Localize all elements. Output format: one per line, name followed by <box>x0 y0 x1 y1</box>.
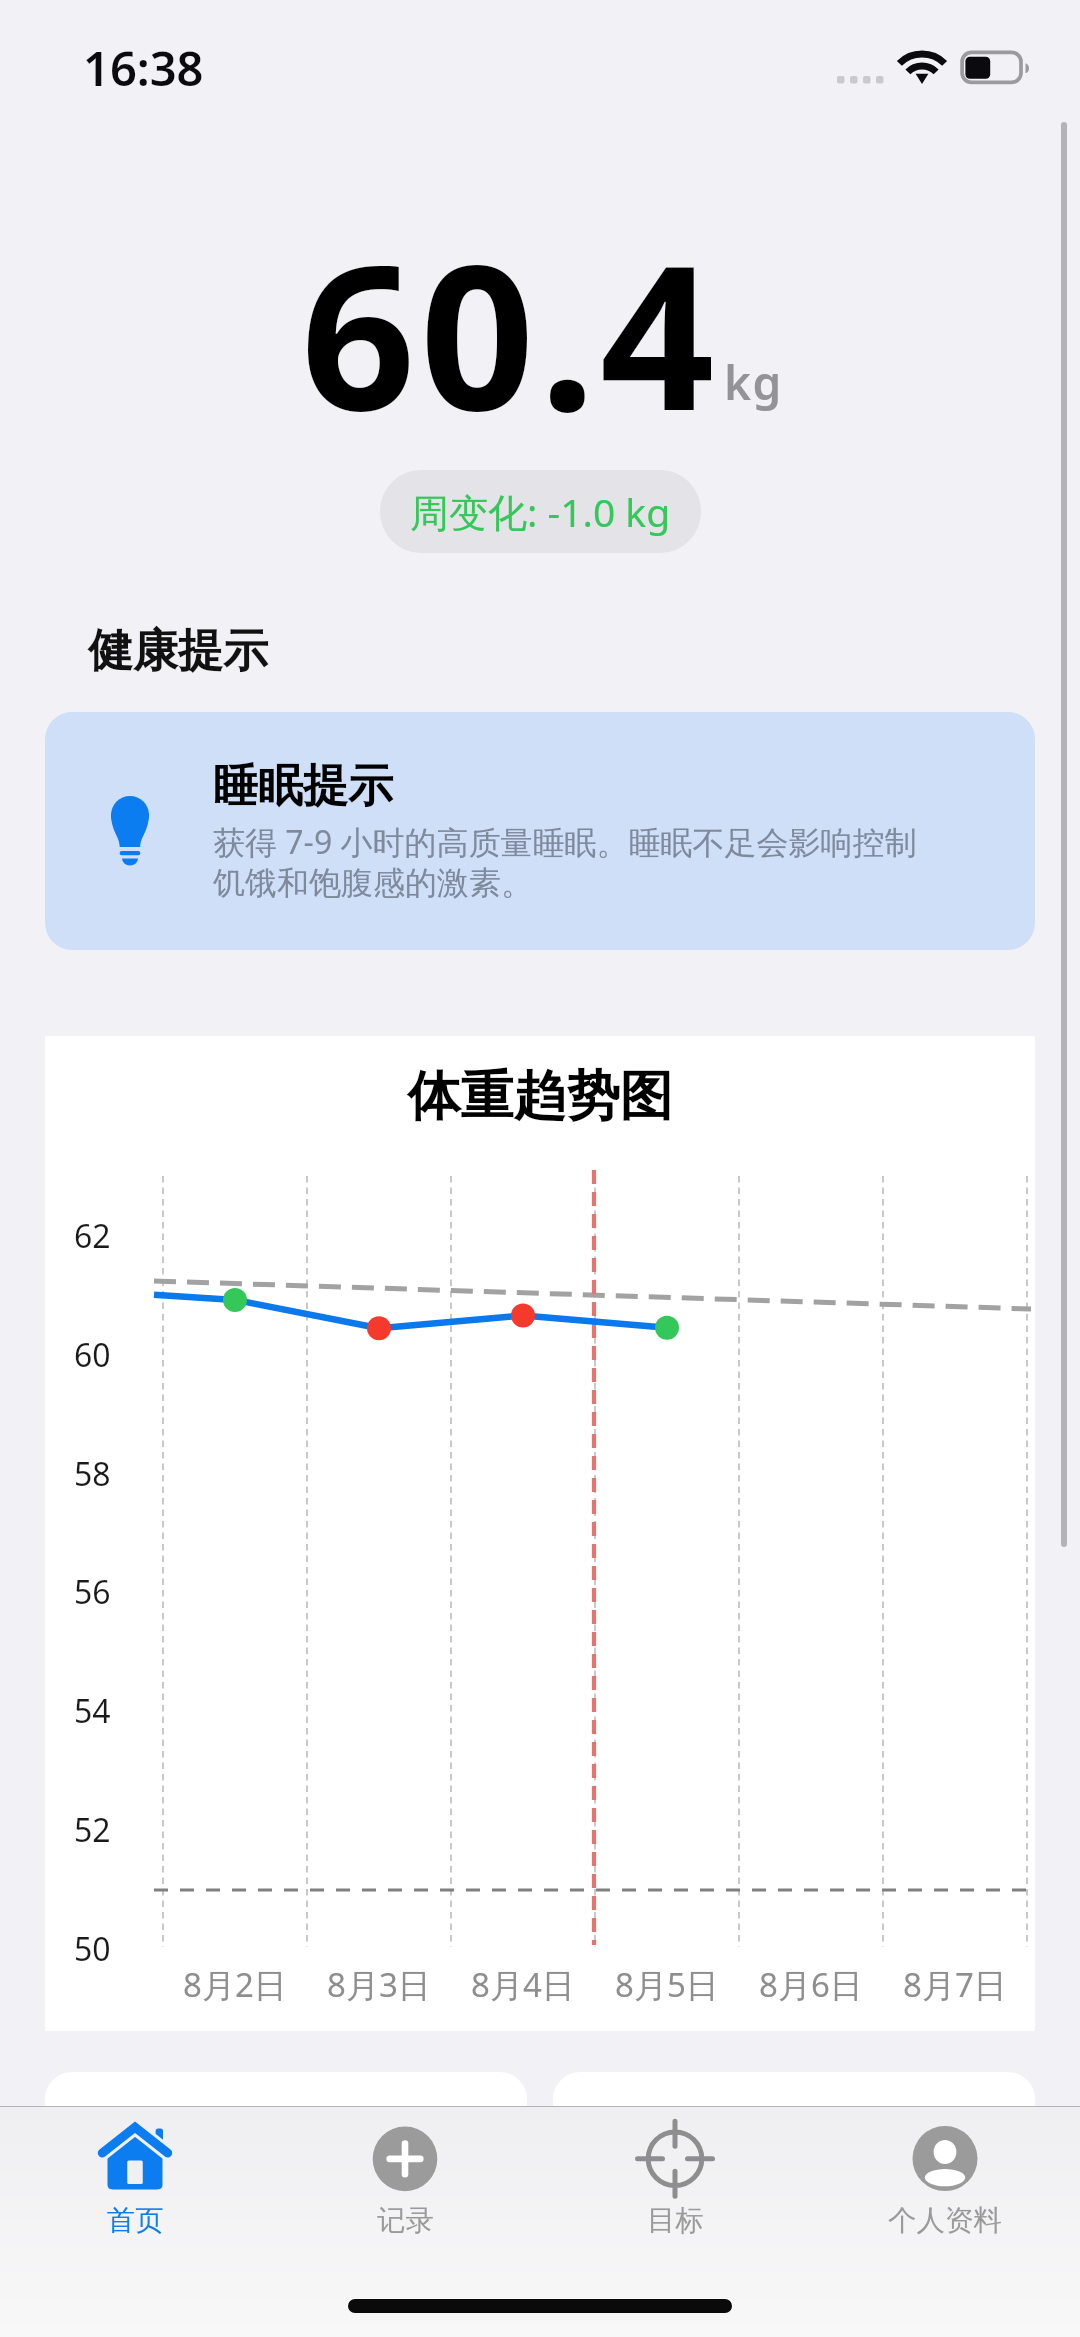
staticText: 获得 7-9 小时的高质量睡眠。睡眠不足会影响控制 饥饿和饱腹感的激素。 <box>213 820 917 903</box>
staticText: 周变化: -1.0 kg <box>410 485 671 538</box>
button[interactable]: 个人资料 <box>810 2106 1080 2239</box>
staticText: 8月3日 <box>327 1962 431 2007</box>
staticText: 8月5日 <box>615 1962 719 2007</box>
other: 个人资料 <box>905 2120 985 2200</box>
staticText: 60.4 <box>301 196 720 468</box>
staticText: 体重趋势图 <box>45 1063 1035 1130</box>
button[interactable]: 记录 <box>270 2106 540 2239</box>
staticText: 记录 <box>377 2203 434 2239</box>
staticText: 首页 <box>107 2203 164 2239</box>
staticText: kg <box>724 351 783 414</box>
staticText: 60 <box>74 1333 111 1377</box>
other: 提示 <box>109 796 151 866</box>
other: 首页 <box>95 2120 175 2200</box>
staticText: 8月7日 <box>903 1962 1007 2007</box>
staticText: 62 <box>74 1214 111 1258</box>
staticText: 8月2日 <box>183 1962 287 2007</box>
staticText: 58 <box>74 1452 111 1496</box>
other: 记录 <box>365 2120 445 2200</box>
staticText: 52 <box>74 1808 111 1852</box>
staticText: 54 <box>74 1689 111 1733</box>
button[interactable]: 提示 <box>45 712 1035 950</box>
button[interactable]: 周变化: -1.0 kg <box>380 470 701 553</box>
staticText: 目标 <box>647 2203 704 2239</box>
staticText: 16:38 <box>83 36 204 100</box>
other: 目标 <box>635 2120 715 2200</box>
staticText: 睡眠提示 <box>213 758 393 815</box>
staticText: 8月4日 <box>471 1962 575 2007</box>
button[interactable]: 首页 <box>0 2106 270 2239</box>
staticText: 健康提示 <box>88 623 268 680</box>
button[interactable] <box>45 2072 527 2272</box>
staticText: 56 <box>74 1570 111 1614</box>
staticText: 个人资料 <box>888 2203 1002 2239</box>
staticText: 8月6日 <box>759 1962 863 2007</box>
button[interactable]: 目标 <box>540 2106 810 2239</box>
staticText: 50 <box>74 1927 111 1971</box>
button[interactable] <box>553 2072 1035 2272</box>
